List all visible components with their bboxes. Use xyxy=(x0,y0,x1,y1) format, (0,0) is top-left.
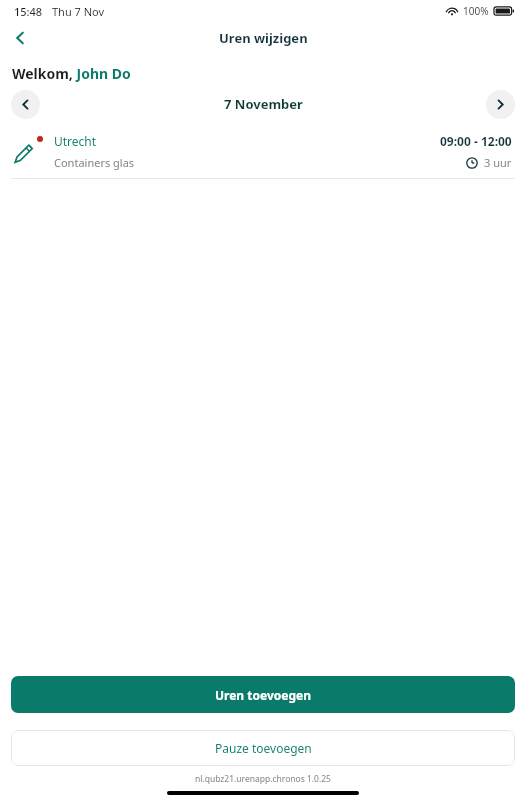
button[interactable]: Uren toevoegen xyxy=(11,676,515,713)
staticText: 09:00 - 12:00 xyxy=(440,133,512,149)
staticText: nl.qubz21.urenapp.chronos 1.0.25 xyxy=(195,773,331,785)
staticText: 3 uur xyxy=(484,155,512,170)
button[interactable]: Pauze toevoegen xyxy=(11,730,515,766)
staticText: Uren toevoegen xyxy=(215,687,311,703)
button[interactable]: Utrecht xyxy=(0,125,526,178)
staticText: 7 November xyxy=(224,95,303,113)
staticText: Pauze toevoegen xyxy=(215,740,312,756)
staticText: Uren wijzigen xyxy=(219,29,308,47)
staticText: Utrecht xyxy=(54,133,97,149)
staticText: 100% xyxy=(463,4,489,18)
staticText: Thu 7 Nov xyxy=(52,4,105,19)
staticText: Welkom, John Do xyxy=(12,64,131,83)
button[interactable]: Back xyxy=(6,24,34,52)
button[interactable]: Vorige dag xyxy=(11,90,40,119)
staticText: 15:48 xyxy=(14,4,43,19)
staticText: Containers glas xyxy=(54,155,135,170)
button[interactable]: Volgende dag xyxy=(486,90,515,119)
